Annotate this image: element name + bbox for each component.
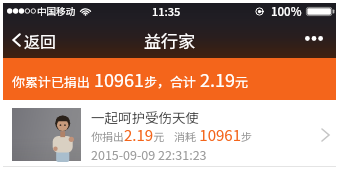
staticText: 你捐出2.19元 消耗 10961步: [91, 124, 252, 146]
staticText: 2015-09-09 22:31:23: [91, 145, 207, 163]
staticText: 一起呵护受伤天使: [91, 107, 199, 127]
button[interactable]: More options: [296, 22, 336, 58]
staticText: 100%: [271, 3, 302, 19]
staticText: 益行家: [144, 28, 195, 53]
staticText: 返回: [24, 29, 57, 52]
button[interactable]: 返回: [3, 22, 69, 58]
button[interactable]: 一起呵护受伤天使: [3, 100, 336, 166]
staticText: 11:35: [152, 3, 181, 19]
staticText: 中国移动: [37, 4, 76, 18]
staticText: 你累计已捐出 10961步，合计 2.19元: [12, 66, 248, 92]
